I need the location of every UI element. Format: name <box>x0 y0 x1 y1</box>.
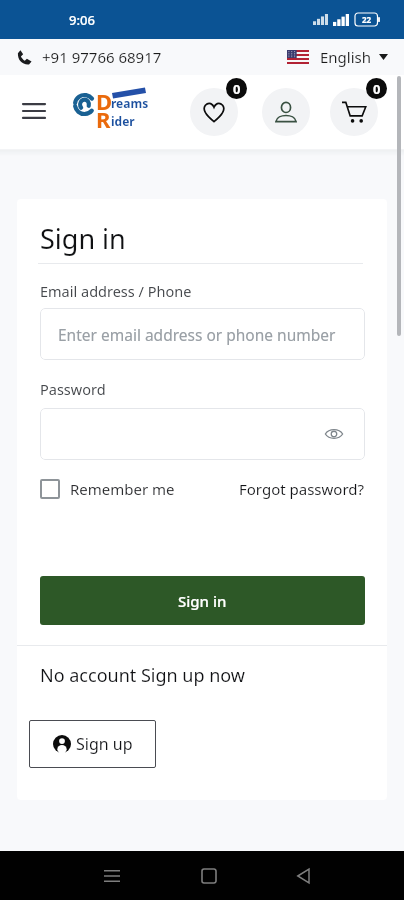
staticText: 0 <box>373 80 381 98</box>
staticText: No account Sign up now <box>40 663 246 688</box>
staticText: Sign up <box>76 733 133 755</box>
staticText: reams <box>111 95 149 111</box>
button[interactable]: English <box>287 47 388 67</box>
staticText: 9:06 <box>69 11 95 29</box>
button[interactable]: Wishlist <box>190 88 238 136</box>
staticText: Sign in <box>178 591 227 611</box>
staticText: English <box>320 47 372 67</box>
staticText: 22 <box>362 14 372 25</box>
button[interactable]: Enter email address or phone number <box>40 308 365 360</box>
button[interactable]: +91 97766 68917 <box>17 47 162 67</box>
button[interactable]: Forgot password? <box>239 479 365 499</box>
button[interactable]: Menu <box>12 89 56 135</box>
button[interactable]: Remember me <box>40 479 175 499</box>
staticText: D <box>96 86 113 116</box>
staticText: Email address / Phone <box>40 281 192 301</box>
staticText: +91 97766 68917 <box>42 47 162 67</box>
button[interactable]: Recent apps <box>84 851 140 900</box>
button[interactable]: Sign up <box>29 720 156 768</box>
button[interactable]: Show password <box>321 421 347 447</box>
button[interactable]: Home <box>181 851 237 900</box>
staticText: Remember me <box>70 479 175 499</box>
button[interactable]: D <box>66 84 150 140</box>
button[interactable]: Back <box>275 851 331 900</box>
staticText: Enter email address or phone number <box>58 324 336 345</box>
button[interactable]: Show password <box>40 408 365 460</box>
button[interactable]: Sign in <box>40 576 365 625</box>
staticText: Password <box>40 379 106 399</box>
staticText: Sign in <box>40 220 126 257</box>
button[interactable]: Account <box>262 88 310 136</box>
staticText: R <box>96 104 111 134</box>
staticText: ider <box>111 113 135 129</box>
button[interactable]: Shopping cart <box>330 88 378 136</box>
staticText: 0 <box>233 80 241 98</box>
